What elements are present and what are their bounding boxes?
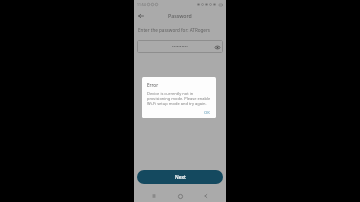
staticText: 11:54 [137, 2, 146, 7]
button[interactable]: Show password [214, 44, 220, 50]
staticText: Password [168, 12, 192, 19]
staticText: Enter the password for: ATRogers [138, 27, 211, 33]
button[interactable]: Home [174, 190, 186, 202]
button[interactable]: OK [202, 109, 212, 117]
staticText: Device is currently not in provisioning … [147, 91, 212, 106]
staticText: Next [175, 174, 186, 181]
button[interactable]: Recents [148, 190, 160, 202]
button[interactable]: Back [136, 11, 146, 21]
button[interactable]: Back [200, 190, 212, 202]
staticText: OK [204, 110, 210, 116]
button[interactable]: •••••••••• [137, 40, 223, 53]
staticText: •••••••••• [172, 44, 188, 50]
button[interactable]: Next [137, 170, 223, 184]
staticText: Error [147, 82, 159, 88]
